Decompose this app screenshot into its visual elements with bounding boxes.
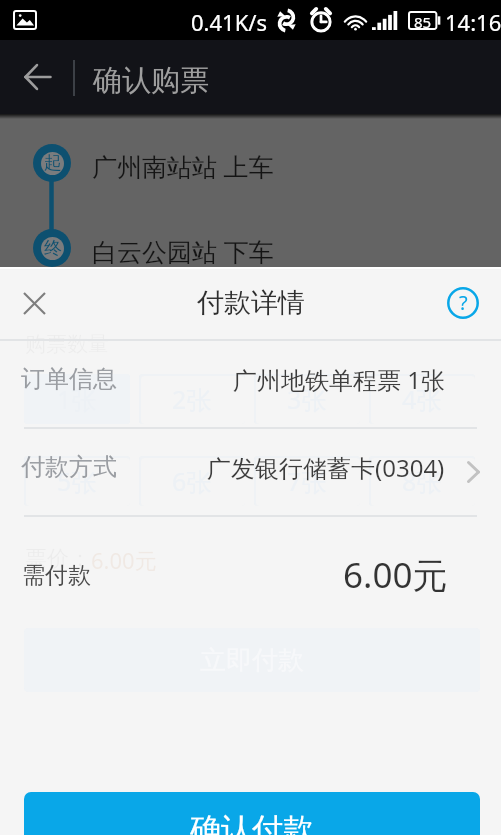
staticText: 广州南站站 上车 xyxy=(92,149,274,183)
staticText: 8张 xyxy=(402,464,442,498)
button[interactable]: 付款方式 xyxy=(0,429,501,515)
staticText: 0.41K/s xyxy=(191,7,267,37)
button[interactable]: 确认付款 xyxy=(24,792,480,835)
button[interactable]: Close xyxy=(10,279,58,327)
staticText: 广州地铁单程票 1张 xyxy=(233,363,445,396)
button[interactable]: Help xyxy=(446,286,480,320)
staticText: 票价： xyxy=(25,545,91,573)
staticText: 3张 xyxy=(287,382,327,416)
staticText: 购票数量 xyxy=(25,331,109,357)
staticText: 2张 xyxy=(172,382,212,416)
staticText: 确认购票 xyxy=(93,62,209,99)
staticText: 订单信息 xyxy=(21,364,117,394)
button[interactable]: 订单信息 xyxy=(0,341,501,427)
button[interactable]: Back xyxy=(13,40,62,114)
staticText: 付款详情 xyxy=(197,286,305,320)
staticText: 5张 xyxy=(57,464,97,498)
staticText: 4张 xyxy=(402,382,442,416)
staticText: 6.00元 xyxy=(343,551,448,599)
staticText: 85 xyxy=(414,12,432,32)
staticText: 7张 xyxy=(287,464,327,498)
staticText: 6张 xyxy=(172,464,212,498)
staticText: 6.00元 xyxy=(91,545,157,575)
staticText: 付款方式 xyxy=(21,452,117,482)
staticText: 需付款 xyxy=(22,561,91,590)
staticText: 终 xyxy=(44,237,62,260)
staticText: 白云公园站 下车 xyxy=(92,234,274,268)
staticText: 14:16 xyxy=(445,7,501,37)
staticText: 起 xyxy=(44,152,62,175)
staticText: ? xyxy=(459,289,468,316)
staticText: 1张 xyxy=(57,382,97,416)
staticText: 确认付款 xyxy=(190,810,314,835)
staticText: 广发银行储蓄卡(0304) xyxy=(207,451,445,484)
